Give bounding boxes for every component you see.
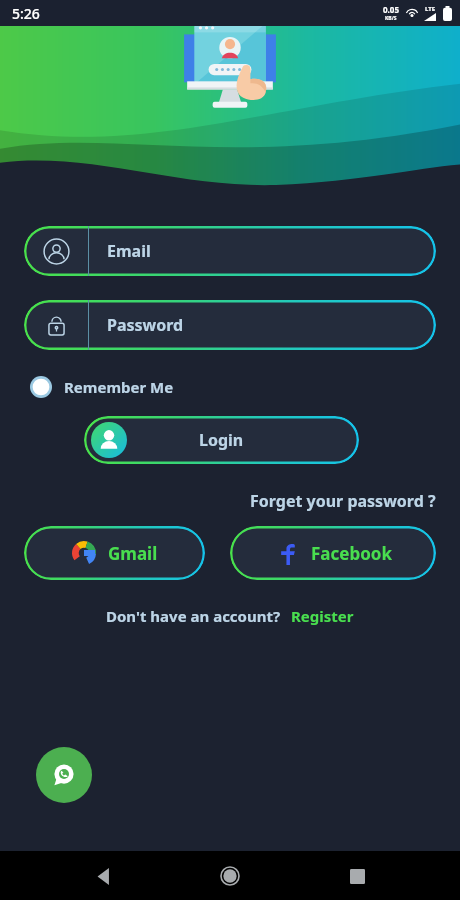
button[interactable]: Gmail — [24, 526, 205, 580]
staticText: Password — [107, 314, 184, 336]
staticText: Login — [199, 429, 244, 451]
button[interactable]: Register — [291, 606, 354, 626]
staticText: Don't have an account? — [106, 606, 281, 626]
staticText: Remember Me — [64, 377, 174, 397]
staticText: Email — [107, 240, 151, 262]
button[interactable]: Login — [84, 416, 359, 464]
button[interactable]: Recents — [333, 852, 381, 900]
staticText: 5:26 — [12, 4, 40, 23]
button[interactable]: Back — [79, 852, 127, 900]
button[interactable]: Password — [24, 300, 436, 350]
button[interactable]: Email — [24, 226, 436, 276]
button[interactable]: Home — [206, 852, 254, 900]
staticText: KB/S — [385, 15, 397, 22]
staticText: LTE — [425, 5, 436, 13]
staticText: 0.05 — [383, 4, 399, 15]
button[interactable]: Forget your password ? — [250, 490, 436, 512]
button[interactable]: WhatsApp — [36, 747, 92, 803]
button[interactable]: Remember Me — [30, 376, 174, 398]
staticText: Gmail — [108, 542, 158, 565]
button[interactable]: Facebook — [230, 526, 436, 580]
staticText: Facebook — [311, 542, 392, 565]
